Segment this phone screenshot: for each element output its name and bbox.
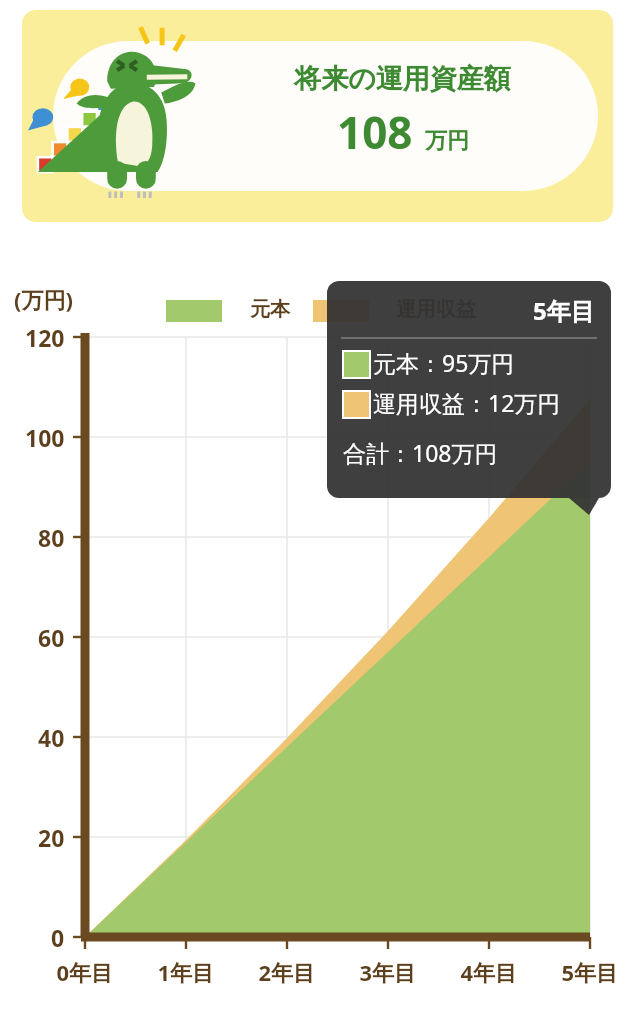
button[interactable]: Asset growth chart <box>0 260 635 1020</box>
button[interactable]: Mascot illustration <box>22 10 613 222</box>
staticText: 万円 <box>425 127 469 155</box>
staticText: 108 <box>337 102 413 162</box>
other: Mascot illustration <box>28 24 208 209</box>
staticText: 将来の運用資産額 <box>294 62 511 96</box>
